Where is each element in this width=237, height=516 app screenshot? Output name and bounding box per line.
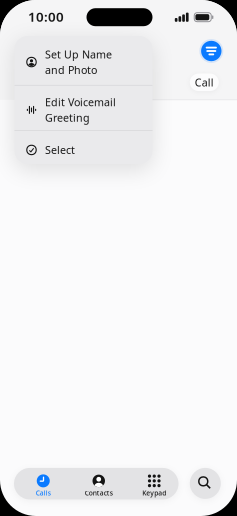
button[interactable]: Edit Voicemail: [14, 86, 152, 130]
button[interactable]: Contacts: [72, 468, 126, 499]
staticText: Select: [45, 143, 75, 157]
staticText: Calls: [36, 489, 51, 497]
button[interactable]: Filter: [199, 39, 223, 63]
staticText: Contacts: [85, 489, 113, 497]
button[interactable]: Call: [190, 73, 219, 91]
button[interactable]: Keypad: [127, 468, 181, 499]
staticText: Set Up Name: [45, 47, 112, 61]
button[interactable]: Set Up Name: [14, 36, 152, 85]
staticText: Keypad: [142, 489, 166, 497]
button[interactable]: Select: [14, 131, 152, 164]
button[interactable]: Search: [190, 468, 221, 499]
staticText: Edit Voicemail: [45, 95, 116, 109]
staticText: 10:00: [28, 8, 64, 25]
staticText: and Photo: [45, 63, 97, 77]
staticText: Call: [195, 75, 214, 89]
staticText: Greeting: [45, 110, 90, 125]
button[interactable]: Calls: [16, 468, 70, 499]
